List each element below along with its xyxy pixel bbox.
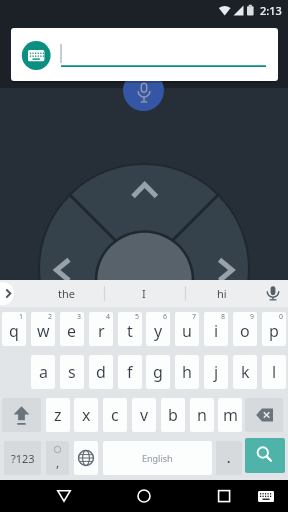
staticText: g bbox=[153, 361, 163, 383]
button[interactable]: a bbox=[31, 355, 55, 389]
staticText: e bbox=[67, 320, 77, 342]
staticText: 3 bbox=[77, 312, 82, 322]
button[interactable]: v bbox=[132, 398, 156, 432]
button[interactable]: English bbox=[103, 441, 212, 475]
button[interactable]: d bbox=[89, 355, 113, 389]
staticText: 9 bbox=[250, 312, 255, 322]
button[interactable]: ?123 bbox=[4, 441, 41, 475]
staticText: the bbox=[58, 286, 75, 301]
button[interactable]: w bbox=[31, 312, 55, 346]
staticText: 2:13 bbox=[260, 3, 282, 18]
staticText: v bbox=[140, 404, 149, 426]
staticText: j bbox=[214, 361, 219, 383]
staticText: , bbox=[56, 454, 60, 470]
staticText: l bbox=[272, 361, 277, 383]
button[interactable]: I bbox=[111, 280, 177, 307]
button[interactable]: b bbox=[161, 398, 185, 432]
button[interactable] bbox=[200, 480, 248, 512]
staticText: k bbox=[241, 361, 250, 383]
button[interactable]: c bbox=[103, 398, 127, 432]
staticText: h bbox=[182, 361, 192, 383]
button[interactable]: s bbox=[60, 355, 84, 389]
button[interactable]: k bbox=[233, 355, 257, 389]
staticText: x bbox=[82, 404, 91, 426]
button[interactable]: j bbox=[204, 355, 228, 389]
button[interactable]: z bbox=[46, 398, 70, 432]
staticText: b bbox=[168, 404, 178, 426]
staticText: u bbox=[182, 320, 192, 342]
staticText: r bbox=[98, 320, 105, 342]
staticText: English bbox=[142, 452, 173, 464]
button[interactable] bbox=[200, 246, 244, 280]
button[interactable]: i bbox=[204, 312, 228, 346]
button[interactable] bbox=[245, 438, 285, 473]
staticText: m bbox=[223, 404, 238, 426]
button[interactable] bbox=[118, 70, 170, 112]
button[interactable]: p bbox=[262, 312, 286, 346]
button[interactable] bbox=[245, 398, 283, 432]
staticText: p bbox=[269, 320, 279, 342]
staticText: z bbox=[54, 404, 62, 426]
staticText: s bbox=[68, 361, 76, 383]
button[interactable]: , bbox=[46, 441, 69, 475]
button[interactable]: n bbox=[190, 398, 214, 432]
button[interactable]: y bbox=[146, 312, 170, 346]
button[interactable] bbox=[74, 441, 98, 475]
button[interactable]: m bbox=[218, 398, 242, 432]
button[interactable] bbox=[11, 28, 278, 81]
staticText: a bbox=[39, 361, 48, 383]
staticText: 7 bbox=[192, 312, 197, 322]
button[interactable] bbox=[40, 480, 88, 512]
staticText: f bbox=[127, 361, 133, 383]
button[interactable]: h bbox=[175, 355, 199, 389]
staticText: . bbox=[227, 450, 231, 466]
button[interactable]: the bbox=[33, 280, 99, 307]
staticText: n bbox=[197, 404, 207, 426]
staticText: t bbox=[127, 320, 133, 342]
button[interactable]: hi bbox=[189, 280, 255, 307]
staticText: 8 bbox=[221, 312, 226, 322]
button[interactable]: q bbox=[2, 312, 26, 346]
button[interactable]: r bbox=[89, 312, 113, 346]
staticText: I bbox=[142, 286, 146, 301]
button[interactable]: g bbox=[146, 355, 170, 389]
staticText: c bbox=[111, 404, 119, 426]
staticText: w bbox=[37, 320, 50, 342]
staticText: 6 bbox=[163, 312, 168, 322]
staticText: 4 bbox=[106, 312, 111, 322]
button[interactable] bbox=[120, 480, 168, 512]
staticText: y bbox=[154, 320, 163, 342]
button[interactable]: t bbox=[118, 312, 142, 346]
button[interactable] bbox=[44, 246, 88, 280]
button[interactable] bbox=[2, 398, 41, 432]
button[interactable]: e bbox=[60, 312, 84, 346]
button[interactable]: u bbox=[175, 312, 199, 346]
staticText: q bbox=[9, 320, 19, 342]
button[interactable]: o bbox=[233, 312, 257, 346]
button[interactable]: f bbox=[118, 355, 142, 389]
staticText: 2 bbox=[48, 312, 53, 322]
button[interactable]: x bbox=[74, 398, 98, 432]
button[interactable]: . bbox=[216, 441, 242, 475]
button[interactable] bbox=[260, 280, 288, 307]
staticText: ?123 bbox=[11, 451, 35, 466]
staticText: 5 bbox=[135, 312, 140, 322]
staticText: 0 bbox=[279, 312, 284, 322]
button[interactable] bbox=[252, 480, 282, 512]
staticText: d bbox=[96, 361, 106, 383]
staticText: 1 bbox=[19, 312, 24, 322]
button[interactable] bbox=[119, 170, 169, 210]
staticText: i bbox=[214, 320, 219, 342]
staticText: o bbox=[240, 320, 250, 342]
button[interactable]: l bbox=[262, 355, 286, 389]
staticText: hi bbox=[217, 286, 227, 301]
